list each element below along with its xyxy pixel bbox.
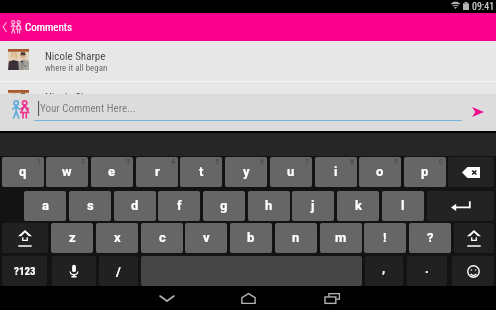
button[interactable]: k [337,191,379,221]
staticText: Comments [25,21,73,34]
button[interactable]: ?123 [2,256,47,286]
staticText: 09:41 [472,1,495,13]
button[interactable]: Home [226,286,270,310]
staticText: i [334,164,338,179]
staticText: where it all began [45,104,108,115]
staticText: p [421,164,429,179]
staticText: Nicole Sharpe [45,50,106,63]
staticText: 5 [215,158,219,166]
button[interactable]: Voice input [52,256,96,286]
staticText: m [335,230,347,245]
staticText: o [376,164,384,179]
staticText: q [19,164,27,179]
staticText: d [131,198,139,213]
button[interactable]: Shift [2,223,48,253]
button[interactable]: i [315,157,357,187]
staticText: k [355,198,362,213]
staticText: z [69,230,76,245]
staticText: 6 [260,158,264,166]
staticText: t [199,164,204,179]
button[interactable]: q [2,157,44,187]
staticText: b [247,230,255,245]
staticText: n [292,230,300,245]
button[interactable]: g [203,191,245,221]
staticText: u [287,164,295,179]
staticText: l [401,198,405,213]
staticText: Nicole Sharpe [45,91,106,104]
staticText: ? [427,230,434,245]
button[interactable]: y [225,157,267,187]
button[interactable]: ! [364,223,406,253]
staticText: e [108,164,116,179]
button[interactable]: d [114,191,156,221]
staticText: x [114,230,121,245]
button[interactable]: o [359,157,401,187]
staticText: where it all began [45,63,108,74]
button[interactable]: z [51,223,93,253]
staticText: 2 [81,158,85,166]
staticText: Your Comment Here... [40,102,136,115]
staticText: s [87,198,94,213]
button[interactable]: Shift [454,223,494,253]
staticText: w [62,164,72,179]
button[interactable]: x [96,223,138,253]
button[interactable]: h [248,191,290,221]
button[interactable]: m [320,223,362,253]
staticText: j [311,198,315,213]
button[interactable]: n [275,223,317,253]
button[interactable]: ? [409,223,451,253]
staticText: ?123 [14,265,36,278]
staticText: f [177,198,182,213]
button[interactable]: Backspace [448,157,494,187]
button[interactable]: r [136,157,178,187]
staticText: 8 [350,158,354,166]
button[interactable]: j [292,191,334,221]
button[interactable]: Hide keyboard [145,286,189,310]
button[interactable]: u [270,157,312,187]
button[interactable]: f [158,191,200,221]
button[interactable]: / [99,256,138,286]
button[interactable]: Nicole Sharpe [0,82,496,122]
staticText: a [42,198,49,213]
staticText: . [425,261,429,276]
button[interactable]: Enter [427,191,494,221]
button[interactable]: w [46,157,88,187]
button[interactable]: p [404,157,446,187]
button[interactable]: Recent apps [310,286,354,310]
staticText: y [243,164,250,179]
staticText: / [116,264,121,279]
staticText: r [155,164,160,179]
button[interactable]: Your Comment Here... [34,99,462,121]
staticText: ! [383,230,387,245]
staticText: 1 [37,158,41,166]
staticText: h [265,198,273,213]
staticText: 0 [439,158,443,166]
button[interactable]: , [365,256,403,286]
staticText: 9 [394,158,398,166]
button[interactable]: v [185,223,227,253]
button[interactable]: Nicole Sharpe [0,41,496,81]
staticText: g [220,198,228,213]
button[interactable]: Emoji [452,256,494,286]
staticText: , [382,261,386,276]
button[interactable]: s [69,191,111,221]
button[interactable]: c [141,223,183,253]
button[interactable]: Back [0,13,10,41]
button[interactable]: Send [466,101,489,123]
staticText: 3 [126,158,130,166]
staticText: v [203,230,210,245]
button[interactable]: a [24,191,66,221]
staticText: c [159,230,166,245]
button[interactable]: e [91,157,133,187]
button[interactable]: b [230,223,272,253]
button[interactable]: l [382,191,424,221]
staticText: 7 [305,158,309,166]
button[interactable]: . [407,256,447,286]
staticText: 4 [171,158,175,166]
button[interactable]: t [180,157,222,187]
